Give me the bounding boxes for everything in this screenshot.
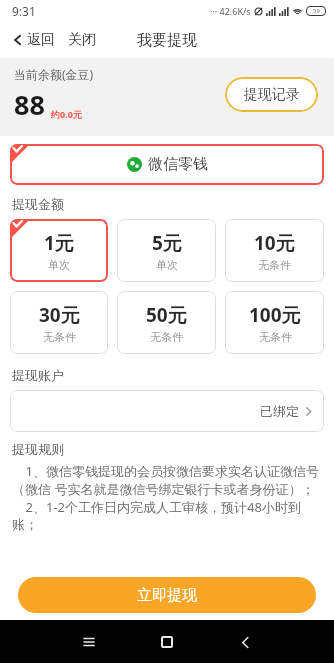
staticText: 当前余额(金豆) [14, 66, 94, 82]
staticText: 提现规则 [12, 441, 64, 457]
staticText: ··· 42.6K/s [210, 5, 251, 17]
staticText: 提现金额 [12, 196, 64, 212]
button[interactable]: 提现记录 [225, 77, 318, 112]
staticText: 立即提现 [137, 586, 197, 605]
staticText: 无条件 [259, 330, 292, 344]
button[interactable]: 100元 [225, 291, 324, 354]
staticText: 无条件 [43, 330, 76, 344]
staticText: 1元 [44, 230, 74, 256]
staticText: 单次 [48, 258, 70, 272]
button[interactable]: 关闭 [66, 27, 98, 53]
button[interactable]: 5元 [117, 219, 216, 282]
staticText: 10元 [254, 230, 295, 256]
staticText: 单次 [156, 258, 178, 272]
staticText: 提现记录 [244, 86, 300, 104]
staticText: 已绑定 [260, 403, 299, 419]
staticText: 30元 [39, 302, 80, 328]
staticText: 1、微信零钱提现的会员按微信要求实名认证微信号（微信 号实名就是微信号绑定银行卡… [12, 462, 322, 533]
button[interactable]: Back [228, 625, 262, 659]
staticText: 提现账户 [12, 367, 64, 383]
staticText: 无条件 [150, 330, 183, 344]
staticText: 返回 [27, 31, 55, 49]
button[interactable]: Home [150, 625, 184, 659]
button[interactable]: 返回 [10, 27, 57, 53]
staticText: 50元 [146, 302, 187, 328]
button[interactable]: 已绑定 [10, 390, 324, 432]
staticText: 9:31 [12, 3, 36, 19]
staticText: 微信零钱 [148, 155, 208, 174]
staticText: 88 [14, 86, 45, 123]
staticText: 100元 [249, 302, 301, 328]
button[interactable]: 立即提现 [18, 577, 316, 613]
button[interactable]: 微信零钱 [10, 144, 324, 185]
staticText: 约0.0元 [51, 108, 82, 120]
button[interactable]: 30元 [10, 291, 108, 354]
button[interactable]: 1元 [10, 219, 108, 282]
button[interactable]: Menu [72, 625, 106, 659]
staticText: 59 [313, 7, 320, 15]
staticText: 无条件 [258, 258, 291, 272]
staticText: 关闭 [68, 31, 96, 49]
button[interactable]: 50元 [117, 291, 216, 354]
button[interactable]: 10元 [225, 219, 324, 282]
staticText: 5元 [152, 230, 182, 256]
staticText: 我要提现 [137, 31, 197, 50]
